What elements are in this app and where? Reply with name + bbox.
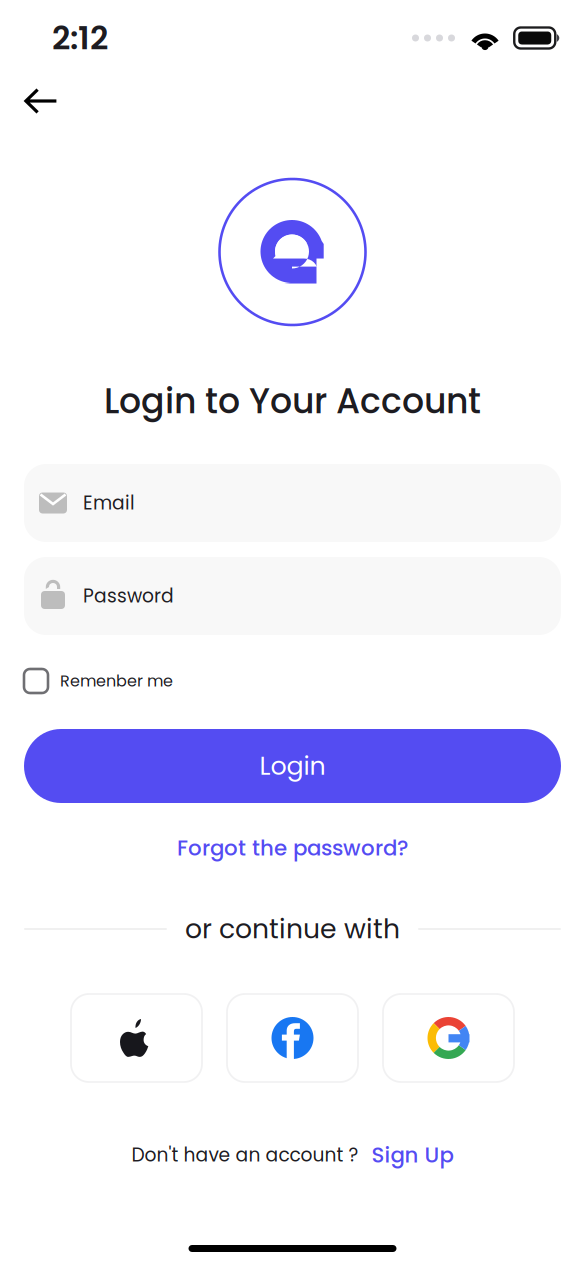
staticText: Sign Up [371,1140,453,1170]
staticText: or continue with [185,910,400,948]
staticText: Remenber me [60,670,173,692]
staticText: Forgot the password? [177,833,408,863]
button[interactable]: Login [0,729,585,803]
button[interactable]: Continue with Google [383,994,514,1082]
button[interactable]: Remenber me [0,659,585,703]
staticText: 2:12 [52,16,108,60]
staticText: Don't have an account ? [131,1142,358,1168]
button[interactable]: Continue with Facebook [227,994,358,1082]
staticText: Login [259,748,325,784]
staticText: Password [83,583,174,609]
staticText: Email [83,490,135,516]
button[interactable]: Back [0,76,82,126]
button[interactable]: Forgot the password? [177,825,408,871]
button[interactable]: Sign Up [371,1140,453,1170]
staticText: Login to Your Account [104,377,481,425]
button[interactable]: Continue with Apple [71,994,202,1082]
